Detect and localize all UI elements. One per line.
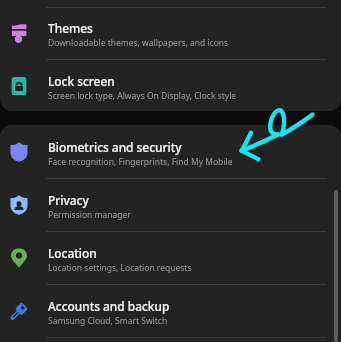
staticText: Samsung Cloud, Smart Switch [48, 315, 168, 327]
button[interactable]: Biometrics and security [0, 126, 341, 179]
staticText: Location [48, 245, 97, 261]
button[interactable]: Location [0, 232, 341, 285]
button[interactable]: Themes [0, 7, 341, 60]
staticText: Lock screen [48, 73, 115, 89]
staticText: Privacy [48, 192, 89, 208]
staticText: Face recognition, Fingerprints, Find My … [48, 156, 233, 168]
button[interactable]: Accounts and backup [0, 285, 341, 338]
button[interactable]: Lock screen [0, 60, 341, 111]
staticText: Permission manager [48, 209, 131, 221]
staticText: Accounts and backup [48, 298, 170, 314]
button[interactable]: Privacy [0, 179, 341, 232]
staticText: Location settings, Location requests [48, 262, 192, 274]
staticText: Biometrics and security [48, 139, 182, 155]
staticText: Themes [48, 20, 93, 36]
staticText: Downloadable themes, wallpapers, and ico… [48, 37, 229, 49]
staticText: Screen lock type, Always On Display, Clo… [48, 90, 237, 102]
